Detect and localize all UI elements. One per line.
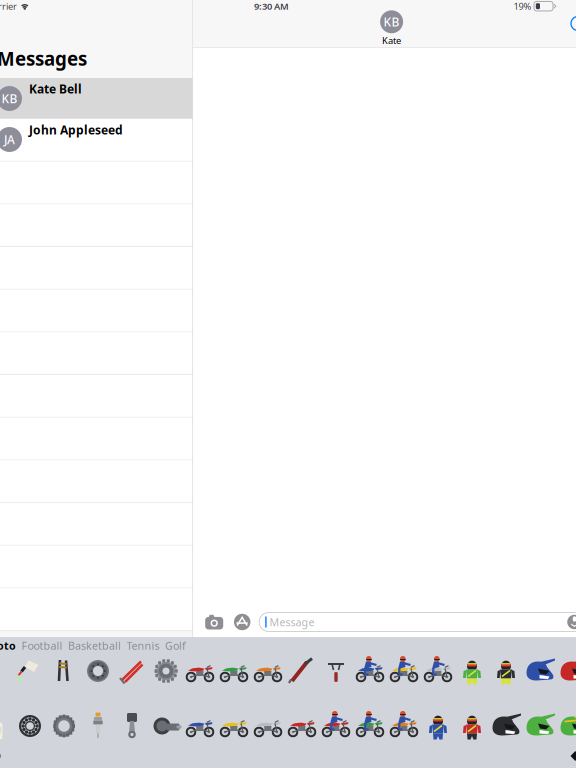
button[interactable]: Sticker	[149, 709, 183, 743]
button[interactable]: Details	[563, 8, 576, 38]
button[interactable]: Sticker	[353, 654, 387, 688]
button[interactable]: Sticker	[251, 709, 285, 743]
button[interactable]: Sticker	[183, 654, 217, 688]
button[interactable]: Sticker	[523, 654, 557, 688]
button[interactable]: Sticker	[557, 709, 576, 743]
staticText: Messages	[0, 46, 87, 71]
button[interactable]: Sticker	[81, 654, 115, 688]
button[interactable]: Sticker	[387, 709, 421, 743]
staticText: Kate	[382, 34, 401, 47]
button[interactable]: Sticker	[81, 709, 115, 743]
button[interactable]: KB	[0, 78, 192, 119]
button[interactable]: Football	[21, 638, 62, 653]
staticText: Football	[21, 638, 62, 653]
staticText: KB	[1, 90, 17, 106]
button[interactable]: JA	[0, 119, 192, 162]
button[interactable]: Sticker	[0, 709, 13, 743]
button[interactable]: Moto	[0, 638, 16, 653]
button[interactable]: Basketball	[68, 638, 121, 653]
button[interactable]: Camera	[203, 612, 225, 632]
staticText: 19%	[513, 0, 531, 12]
staticText: Basketball	[68, 638, 121, 653]
staticText: Kate Bell	[29, 81, 82, 97]
staticText: John Appleseed	[29, 122, 123, 138]
button[interactable]: Sticker	[489, 709, 523, 743]
button[interactable]: Sticker	[217, 654, 251, 688]
button[interactable]: Sticker	[557, 654, 576, 688]
button[interactable]: Sticker	[285, 709, 319, 743]
staticText: Golf	[165, 638, 186, 653]
staticText: 9:30 AM	[254, 0, 289, 12]
staticText: Message	[270, 615, 315, 629]
button[interactable]: Sticker	[421, 709, 455, 743]
button[interactable]: Delete	[567, 748, 576, 764]
button[interactable]: Sticker	[149, 654, 183, 688]
button[interactable]: Sticker	[421, 654, 455, 688]
button[interactable]: Sticker	[115, 654, 149, 688]
button[interactable]: Sticker	[523, 709, 557, 743]
staticText: Carrier	[0, 0, 17, 12]
button[interactable]: KB	[369, 11, 415, 45]
button[interactable]: Sticker	[285, 654, 319, 688]
button[interactable]: Sticker	[47, 709, 81, 743]
button[interactable]: Sticker	[489, 654, 523, 688]
button[interactable]: Sticker	[387, 654, 421, 688]
staticText: Moto	[0, 638, 16, 653]
button[interactable]: Sticker	[319, 654, 353, 688]
button[interactable]: Apps	[232, 612, 252, 632]
button[interactable]: Sticker	[47, 654, 81, 688]
button[interactable]: Sticker	[455, 654, 489, 688]
staticText: JA	[4, 131, 15, 147]
button[interactable]: Sticker	[217, 709, 251, 743]
button[interactable]: Tennis	[126, 638, 159, 653]
button[interactable]: Next keyboard	[0, 748, 4, 764]
button[interactable]: Sticker	[183, 709, 217, 743]
button[interactable]: Sticker	[13, 654, 47, 688]
button[interactable]: Sticker	[455, 709, 489, 743]
button[interactable]: Sticker	[353, 709, 387, 743]
button[interactable]: Sticker	[115, 709, 149, 743]
staticText: KB	[384, 14, 400, 30]
button[interactable]: Sticker	[251, 654, 285, 688]
button[interactable]: Sticker	[13, 709, 47, 743]
button[interactable]: Sticker	[319, 709, 353, 743]
button[interactable]: Golf	[165, 638, 186, 653]
staticText: Tennis	[126, 638, 159, 653]
